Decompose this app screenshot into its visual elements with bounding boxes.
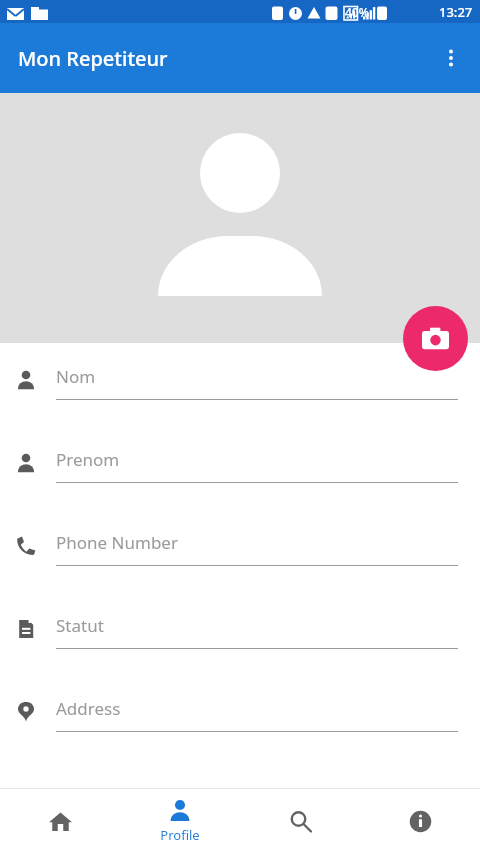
button[interactable]: Address [0,693,480,776]
button[interactable]: Nom [0,361,480,444]
button[interactable]: Prenom [0,444,480,527]
button[interactable]: More options [427,34,475,82]
button[interactable]: Phone Number [0,527,480,610]
button[interactable] [0,93,480,343]
staticText: Profile [160,826,200,844]
staticText: Address [56,697,121,720]
staticText: Nom [56,365,96,388]
staticText: Mon Repetiteur [18,45,168,72]
button[interactable]: Info [360,789,480,853]
staticText: Statut [56,614,104,637]
button[interactable]: Take photo [403,306,468,371]
button[interactable]: Profile [120,789,240,853]
staticText: 13:27 [439,3,473,21]
staticText: Prenom [56,448,120,471]
button[interactable]: Search [240,789,360,853]
staticText: 40% [345,4,369,20]
button[interactable]: Statut [0,610,480,693]
staticText: Phone Number [56,531,178,554]
button[interactable]: Home [0,789,120,853]
